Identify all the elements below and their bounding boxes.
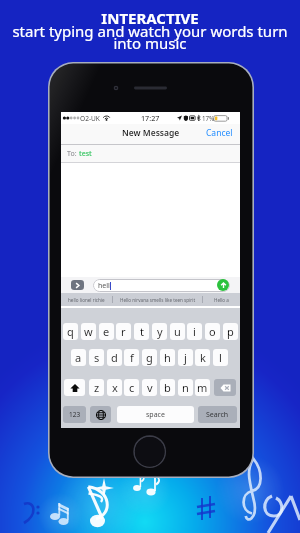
staticText: q [67, 324, 74, 339]
staticText: hell [98, 281, 110, 291]
button[interactable]: Send [217, 279, 229, 291]
staticText: hello lionel richie [68, 297, 105, 303]
staticText: into music [0, 33, 300, 53]
staticText: New Message [122, 127, 180, 139]
button[interactable]: r [116, 323, 131, 340]
button[interactable]: Hello a [203, 293, 240, 306]
button[interactable]: Cancel [206, 127, 233, 139]
staticText: 17% [202, 114, 215, 122]
button[interactable]: g [142, 349, 157, 366]
staticText: o [209, 324, 216, 339]
button[interactable]: p [223, 323, 238, 340]
staticText: y [157, 324, 163, 339]
staticText: h [164, 350, 171, 365]
button[interactable]: j [178, 349, 193, 366]
staticText: Cancel [206, 127, 233, 139]
staticText: k [200, 350, 206, 365]
staticText: Search [206, 410, 229, 420]
staticText: i [193, 324, 196, 339]
button[interactable]: Numbers [63, 406, 86, 423]
button[interactable]: Hello nirvana smells like teen spirit [113, 293, 202, 306]
staticText: 123 [69, 410, 81, 419]
button[interactable]: v [142, 379, 157, 396]
button[interactable]: k [195, 349, 210, 366]
staticText: e [103, 324, 110, 339]
staticText: Hello a [214, 297, 229, 303]
button[interactable]: m [195, 379, 210, 396]
button[interactable]: f [124, 349, 139, 366]
staticText: c [129, 380, 135, 395]
staticText: 17:27 [141, 113, 160, 123]
button[interactable]: y [152, 323, 167, 340]
staticText: test [79, 149, 92, 159]
staticText: r [121, 324, 126, 339]
staticText: p [227, 324, 234, 339]
button[interactable]: c [124, 379, 139, 396]
button[interactable]: e [99, 323, 114, 340]
button[interactable]: Backspace [214, 379, 236, 396]
button[interactable]: a [71, 349, 86, 366]
staticText: j [184, 350, 187, 365]
staticText: z [94, 380, 100, 395]
button[interactable]: z [89, 379, 104, 396]
staticText: l [219, 350, 222, 365]
staticText: w [84, 324, 93, 339]
staticText: x [112, 380, 118, 395]
button[interactable]: Shift [64, 379, 85, 396]
button[interactable]: l [213, 349, 228, 366]
button[interactable]: Search [198, 406, 237, 423]
button[interactable]: u [170, 323, 185, 340]
button[interactable]: hello lionel richie [61, 293, 112, 306]
button[interactable]: d [107, 349, 122, 366]
button[interactable]: t [134, 323, 149, 340]
button[interactable]: n [178, 379, 193, 396]
staticText: b [164, 380, 171, 395]
staticText: To: [67, 149, 79, 159]
button[interactable]: o [205, 323, 220, 340]
staticText: g [146, 350, 153, 365]
button[interactable]: i [187, 323, 202, 340]
button[interactable]: Apps [71, 280, 84, 290]
staticText: s [94, 350, 100, 365]
button[interactable]: w [81, 323, 96, 340]
staticText: n [182, 380, 189, 395]
button[interactable]: q [63, 323, 78, 340]
staticText: d [111, 350, 118, 365]
staticText: u [174, 324, 181, 339]
button[interactable]: Switch keyboard [90, 406, 111, 423]
staticText: t [140, 324, 144, 339]
button[interactable]: Space [117, 406, 194, 423]
button[interactable]: x [107, 379, 122, 396]
button[interactable]: b [160, 379, 175, 396]
button[interactable]: hell [93, 279, 230, 292]
staticText: Hello nirvana smells like teen spirit [120, 297, 196, 303]
staticText: a [75, 350, 82, 365]
staticText: m [197, 380, 208, 395]
staticText: v [147, 380, 153, 395]
staticText: O2-UK [80, 114, 100, 123]
button[interactable]: s [89, 349, 104, 366]
staticText: start typing and watch your words turn [0, 21, 300, 41]
staticText: space [146, 410, 165, 420]
staticText: f [130, 350, 134, 365]
button[interactable]: h [160, 349, 175, 366]
staticText: INTERACTIVE [0, 8, 300, 28]
